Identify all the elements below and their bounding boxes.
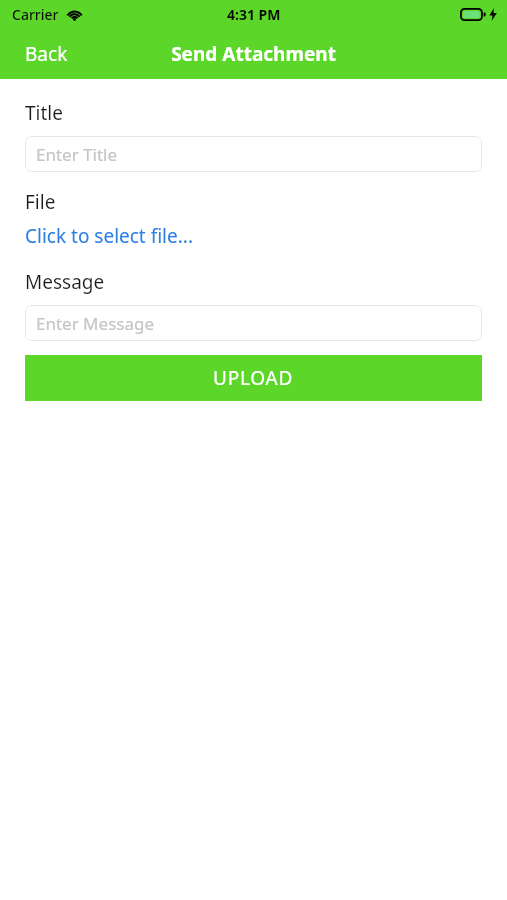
button[interactable]: Back — [0, 31, 93, 77]
button[interactable]: Enter Title — [25, 136, 482, 172]
staticText: Click to select file... — [25, 223, 193, 249]
staticText: Carrier — [12, 5, 59, 24]
staticText: Message — [25, 269, 105, 295]
staticText: 4:31 PM — [227, 5, 281, 24]
button[interactable]: Enter Message — [25, 305, 482, 341]
staticText: Enter Title — [36, 143, 118, 166]
button[interactable]: UPLOAD — [25, 355, 482, 401]
staticText: UPLOAD — [213, 365, 294, 391]
button[interactable]: Click to select file... — [25, 220, 193, 252]
staticText: Send Attachment — [171, 41, 336, 67]
staticText: Enter Message — [36, 312, 154, 335]
staticText: Title — [25, 100, 63, 126]
staticText: Back — [25, 41, 68, 67]
staticText: File — [25, 189, 56, 215]
